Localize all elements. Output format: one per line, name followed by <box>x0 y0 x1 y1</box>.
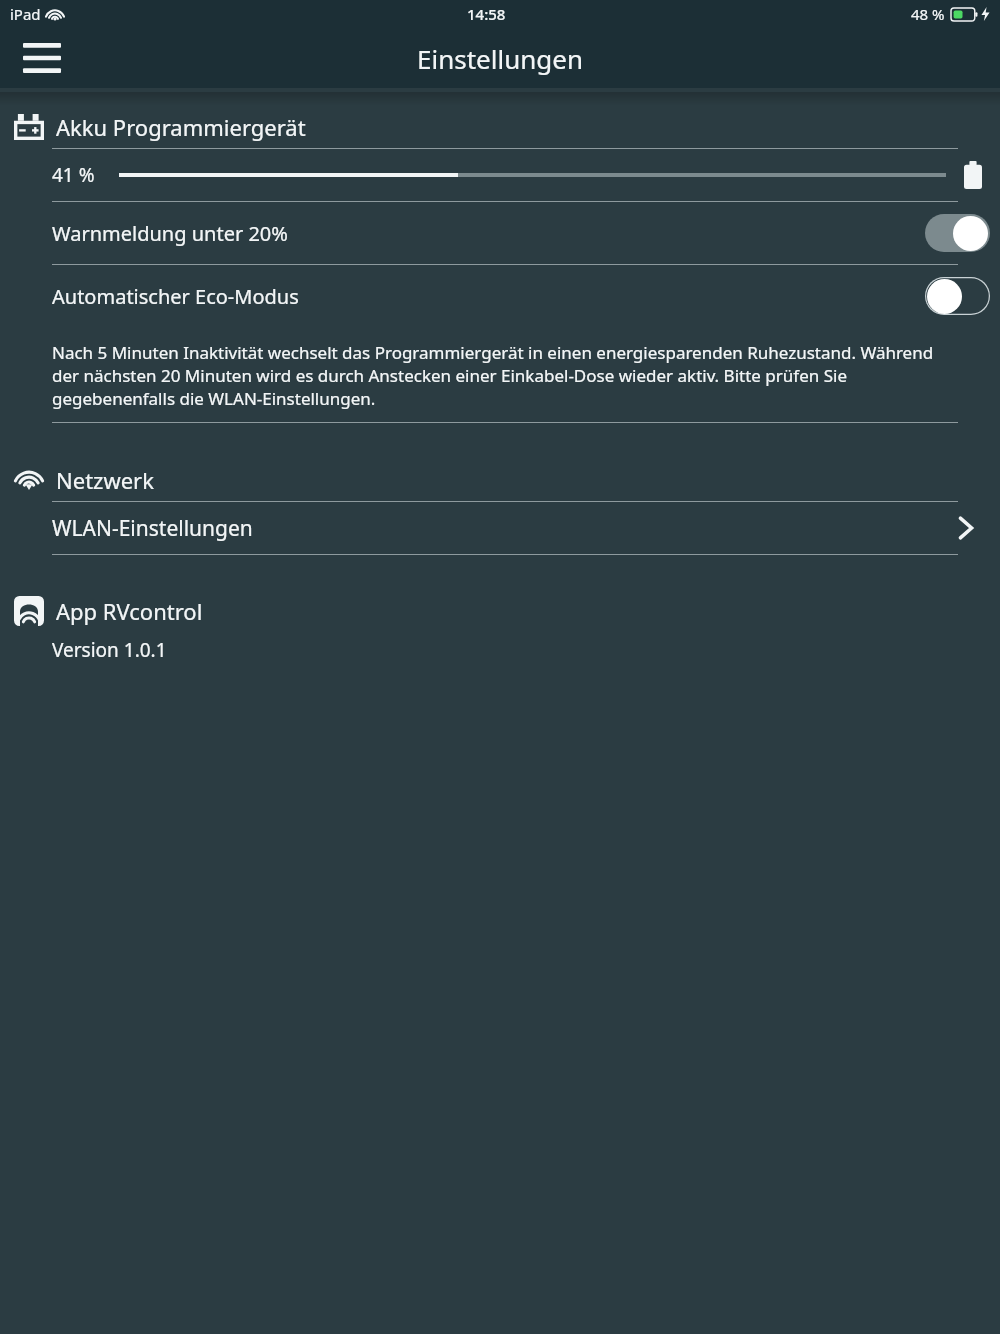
staticText: 41 % <box>52 162 95 188</box>
staticText: 14:58 <box>467 4 506 24</box>
staticText: Akku Programmiergerät <box>56 112 306 142</box>
staticText: iPad <box>10 4 41 24</box>
button[interactable]: Menü <box>16 36 68 80</box>
button[interactable]: Warnmeldung unter 20% <box>0 202 1000 264</box>
staticText: WLAN-Einstellungen <box>52 514 253 543</box>
staticText: Einstellungen <box>417 41 584 76</box>
staticText: Automatischer Eco-Modus <box>52 283 299 310</box>
staticText: Netzwerk <box>56 465 154 495</box>
staticText: Warnmeldung unter 20% <box>52 220 288 247</box>
staticText: App RVcontrol <box>56 596 203 626</box>
staticText: Nach 5 Minuten Inaktivität wechselt das … <box>52 341 958 410</box>
button[interactable]: Automatischer Eco-Modus <box>0 265 1000 327</box>
staticText: 48 % <box>911 4 945 24</box>
staticText: Version 1.0.1 <box>52 637 167 663</box>
button[interactable]: WLAN-Einstellungen <box>0 502 1000 554</box>
